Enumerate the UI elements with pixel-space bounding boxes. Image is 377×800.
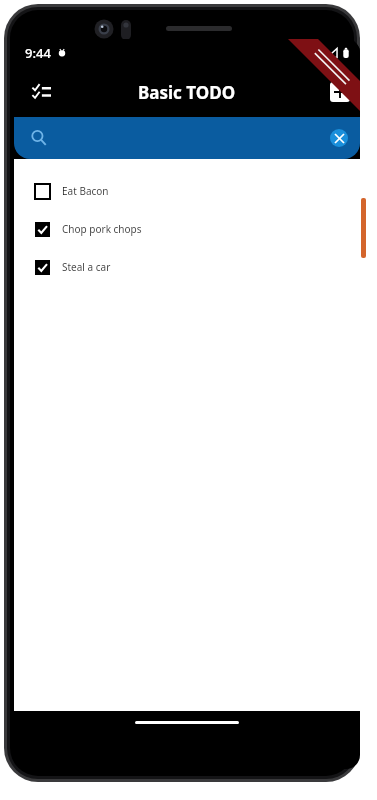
staticText: 9:44: [25, 44, 51, 62]
staticText: Chop pork chops: [62, 222, 142, 236]
button[interactable]: Chop pork chops: [14, 210, 360, 248]
other: Search: [28, 127, 50, 149]
button[interactable]: Add task: [330, 82, 350, 102]
button[interactable]: Steal a car: [14, 248, 360, 286]
button[interactable]: Eat Bacon: [14, 172, 360, 210]
button[interactable]: Search: [14, 117, 360, 159]
staticText: Basic TODO: [138, 81, 236, 104]
staticText: Steal a car: [62, 260, 111, 274]
button[interactable]: Sort tasks: [22, 73, 60, 111]
staticText: Eat Bacon: [62, 184, 109, 198]
button[interactable]: Clear search: [330, 129, 348, 147]
